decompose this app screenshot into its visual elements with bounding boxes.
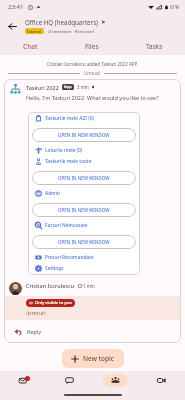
button[interactable]: Files [61, 38, 123, 55]
staticText: Cristian Iscrulescu added Taskuri 2022 A… [47, 61, 138, 67]
staticText: OPEN IN NEW WINDOW [58, 132, 110, 138]
staticText: Loturile mele (0) [45, 147, 83, 154]
button[interactable]: OPEN IN NEW WINDOW [32, 128, 136, 142]
button[interactable]: OPEN IN NEW WINDOW [32, 235, 136, 249]
staticText: 23:41 [8, 3, 24, 11]
staticText: Taskuri 2022 [26, 84, 59, 91]
button[interactable]: Settings [32, 263, 136, 274]
staticText: Chat [23, 42, 38, 51]
staticText: Taskurile mele AZI (0) [45, 115, 94, 122]
staticText: · 20 members · Restricted [46, 29, 94, 34]
staticText: External [27, 29, 42, 34]
staticText: 1 min [83, 283, 95, 289]
staticText: Hello, I'm Taskuri 2022. What would you … [26, 94, 159, 101]
button[interactable]: Taskurile mele AZI (0) [32, 113, 136, 124]
staticText: 3 min [77, 84, 89, 90]
staticText: Facturi Neincasate [45, 222, 88, 229]
button[interactable]: Chat [57, 374, 82, 387]
staticText: Only visible to you [35, 300, 72, 306]
button[interactable]: OPEN IN NEW WINDOW [32, 171, 136, 185]
button[interactable]: Chat [0, 38, 61, 55]
staticText: OPEN IN NEW WINDOW [58, 207, 110, 213]
staticText: Tasks [146, 42, 163, 51]
staticText: Cristian Iscrulescu [26, 282, 75, 289]
staticText: App [64, 84, 72, 90]
staticText: Office HQ (headquarters) [25, 18, 98, 26]
staticText: OPEN IN NEW WINDOW [58, 239, 110, 245]
staticText: Unread [84, 70, 100, 76]
button[interactable]: Preturi Recomandate [32, 252, 136, 263]
button[interactable]: Teams [103, 374, 128, 387]
button[interactable]: Activity [11, 374, 36, 387]
staticText: Reply [27, 328, 42, 335]
button[interactable]: New topic [62, 349, 124, 368]
button[interactable]: Calls [149, 374, 174, 387]
staticText: Preturi Recomandate [45, 254, 94, 261]
staticText: New topic [83, 354, 115, 363]
button[interactable]: Back [3, 17, 21, 35]
button[interactable]: Tasks [123, 38, 185, 55]
button[interactable]: Reply [4, 320, 181, 343]
button[interactable]: Loturile mele (0) [32, 145, 136, 156]
button[interactable]: Facturi Neincasate [32, 220, 136, 231]
staticText: 61% [170, 4, 179, 10]
button[interactable]: Taskurile mele toate [32, 156, 136, 167]
staticText: Files [85, 42, 99, 51]
staticText: Admin [45, 190, 60, 197]
staticText: /preturi [26, 309, 46, 316]
staticText: Taskurile mele toate [45, 158, 92, 165]
button[interactable]: OPEN IN NEW WINDOW [32, 203, 136, 217]
button[interactable]: Admin [32, 188, 136, 199]
staticText: OPEN IN NEW WINDOW [58, 175, 110, 181]
staticText: Settings [45, 265, 64, 272]
